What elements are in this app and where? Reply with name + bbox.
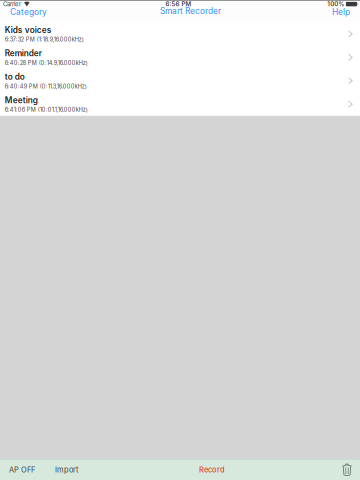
staticText: Record: [199, 465, 225, 474]
staticText: Smart Recorder: [160, 6, 221, 16]
staticText: Kids voices: [5, 25, 52, 35]
button[interactable]: to do: [0, 69, 360, 92]
button[interactable]: AP OFF: [6, 461, 38, 478]
button[interactable]: Kids voices: [0, 22, 360, 46]
staticText: 100%: [327, 0, 344, 8]
button[interactable]: Help: [329, 6, 353, 18]
staticText: Reminder: [5, 48, 42, 58]
staticText: 6:40:28 PM (0:14.9,16.000kHz): [5, 60, 88, 66]
staticText: Meeting: [5, 95, 38, 105]
staticText: Carrier: [3, 0, 21, 8]
staticText: Import: [55, 465, 78, 474]
staticText: 6:41:06 PM (10:01.1,16.000kHz): [5, 106, 88, 113]
button[interactable]: Reminder: [0, 46, 360, 69]
staticText: 6:56 PM: [165, 0, 191, 8]
button[interactable]: Record: [196, 461, 228, 478]
staticText: Category: [10, 7, 47, 17]
staticText: AP OFF: [9, 465, 35, 474]
button[interactable]: Category: [7, 6, 50, 18]
button[interactable]: Meeting: [0, 92, 360, 116]
staticText: to do: [5, 72, 25, 82]
button[interactable]: Delete: [340, 461, 354, 478]
staticText: 6:37:32 PM (1:18.9,16.000kHz): [5, 36, 84, 43]
button[interactable]: Import: [52, 461, 81, 478]
staticText: 6:40:49 PM (0:11.3,16.000kHz): [5, 83, 87, 90]
staticText: Help: [332, 7, 350, 17]
